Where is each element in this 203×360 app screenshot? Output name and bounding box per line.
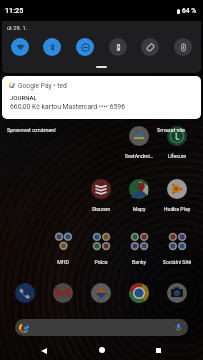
- button[interactable]: Recent apps: [147, 341, 169, 360]
- button[interactable]: Smazat vše: [157, 127, 185, 133]
- button[interactable]: Quick setting: [76, 38, 94, 56]
- staticText: Mapy: [118, 206, 160, 212]
- button[interactable]: [158, 179, 196, 211]
- button[interactable]: [44, 231, 82, 263]
- staticText: SvetAndroi…: [118, 153, 160, 159]
- button[interactable]: Spravovat oznámení: [7, 127, 56, 133]
- staticText: Shazam: [80, 206, 122, 212]
- staticText: Banky: [118, 259, 160, 265]
- button[interactable]: Home: [91, 340, 113, 359]
- button[interactable]: [82, 179, 120, 211]
- button[interactable]: [120, 179, 158, 211]
- staticText: Lifesum: [156, 153, 198, 159]
- staticText: Práce: [80, 259, 122, 265]
- button[interactable]: Google Pay • teď: [2, 76, 201, 119]
- staticText: MHD: [42, 259, 84, 265]
- button[interactable]: Back: [33, 341, 55, 360]
- button[interactable]: [158, 231, 196, 263]
- button[interactable]: [120, 126, 158, 158]
- button[interactable]: Phone: [12, 280, 38, 306]
- staticText: út 29. 1.: [7, 25, 28, 32]
- staticText: 64 %: [182, 7, 196, 15]
- staticText: Google Pay • teď: [18, 82, 68, 90]
- button[interactable]: Quick setting: [174, 38, 192, 56]
- button[interactable]: [82, 231, 120, 263]
- button[interactable]: Quick setting: [11, 38, 29, 56]
- button[interactable]: Quick setting: [109, 38, 127, 56]
- button[interactable]: [158, 126, 196, 158]
- button[interactable]: Chrome: [126, 280, 152, 306]
- button[interactable]: Camera: [164, 280, 190, 306]
- button[interactable]: Messenger: [88, 280, 114, 306]
- button[interactable]: Quick setting: [43, 38, 61, 56]
- staticText: Sociální Sítě: [156, 259, 198, 265]
- button[interactable]: [15, 319, 188, 336]
- button[interactable]: [120, 231, 158, 263]
- staticText: 660,00 Kč kartou Mastercard •••• 6596: [10, 103, 125, 111]
- button[interactable]: Quick setting: [141, 38, 159, 56]
- staticText: Hudba Play: [156, 206, 198, 212]
- button[interactable]: Gmail: [50, 280, 76, 306]
- staticText: JOURNAL: [10, 94, 37, 101]
- staticText: 11:25: [5, 6, 24, 14]
